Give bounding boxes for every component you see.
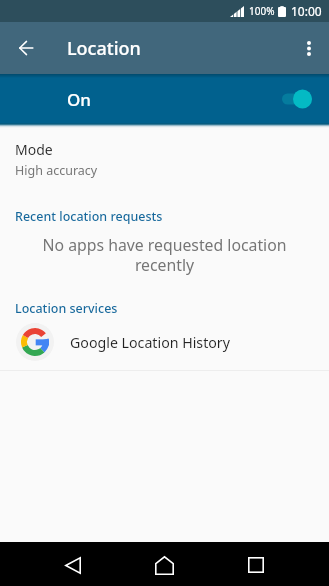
staticText: Location services	[15, 300, 118, 317]
staticText: Mode	[15, 140, 53, 159]
staticText: Recent location requests	[15, 208, 163, 225]
staticText: 100%	[249, 4, 275, 18]
button[interactable]: On	[0, 74, 329, 124]
staticText: No apps have requested location recently	[38, 234, 291, 276]
button[interactable]: Navigate up	[0, 22, 52, 74]
button[interactable]: More options	[289, 22, 329, 74]
button[interactable]: Back	[27, 542, 119, 586]
staticText: 10:00	[291, 3, 322, 19]
button[interactable]: Mode	[0, 140, 329, 179]
staticText: Location	[67, 36, 141, 61]
staticText: On	[67, 88, 91, 111]
button[interactable]: Recent apps	[210, 542, 302, 586]
staticText: Google Location History	[70, 333, 230, 352]
button[interactable]: Home	[119, 542, 210, 586]
button[interactable]: Google Location History	[0, 323, 329, 361]
staticText: High accuracy	[15, 162, 98, 179]
